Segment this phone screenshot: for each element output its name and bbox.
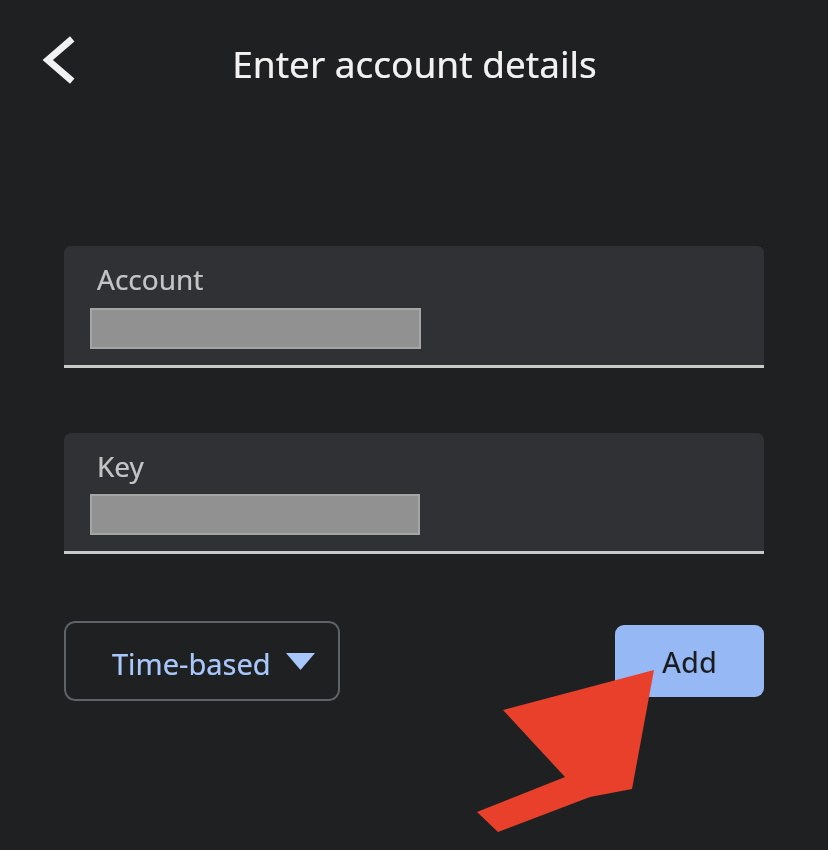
staticText: Time-based [112,644,271,683]
button[interactable]: Back [12,12,108,108]
button[interactable]: Key [64,433,764,554]
staticText: Add [662,642,717,681]
staticText: Account [97,260,204,298]
staticText: Key [97,447,144,485]
button[interactable]: Account [64,246,764,368]
button[interactable]: Add [615,625,764,697]
button[interactable]: Time-based [64,621,340,701]
staticText: Enter account details [232,38,597,86]
